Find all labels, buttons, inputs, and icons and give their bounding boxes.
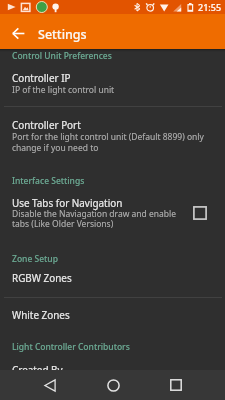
staticText: Use Tabs for Navigation (12, 196, 123, 209)
button[interactable]: Recent apps (160, 370, 191, 400)
button[interactable]: Back (34, 370, 65, 400)
button[interactable]: Navigate up (7, 22, 30, 45)
staticText: RGBW Zones (12, 271, 72, 284)
staticText: tabs (Like Older Versions) (12, 218, 114, 230)
button[interactable]: Use Tabs for Navigation (0, 190, 225, 214)
button[interactable]: Created By (0, 357, 225, 381)
staticText: 21:55 (198, 1, 222, 13)
button[interactable]: Controller Port (0, 112, 225, 136)
staticText: Controller Port (12, 118, 81, 131)
staticText: Interface Settings (12, 175, 85, 187)
staticText: Settings (38, 26, 87, 43)
staticText: Controller IP (12, 71, 71, 84)
staticText: Port for the light control unit (Default… (12, 131, 204, 143)
staticText: White Zones (12, 308, 70, 321)
staticText: IP of the light control unit (12, 84, 115, 96)
staticText: Light Controller Contributors (12, 341, 130, 353)
button[interactable]: White Zones (0, 302, 225, 326)
button[interactable]: Controller IP (0, 65, 225, 89)
staticText: Control Unit Preferences (12, 50, 112, 62)
staticText: Disable the Naviagation draw and enable (12, 208, 177, 220)
button[interactable]: Home (98, 370, 129, 400)
button[interactable] (0, 192, 225, 229)
staticText: change if you need to (12, 142, 99, 154)
button[interactable]: RGBW Zones (0, 265, 225, 289)
staticText: Zone Setup (12, 253, 58, 265)
staticText: Created By (12, 363, 63, 376)
